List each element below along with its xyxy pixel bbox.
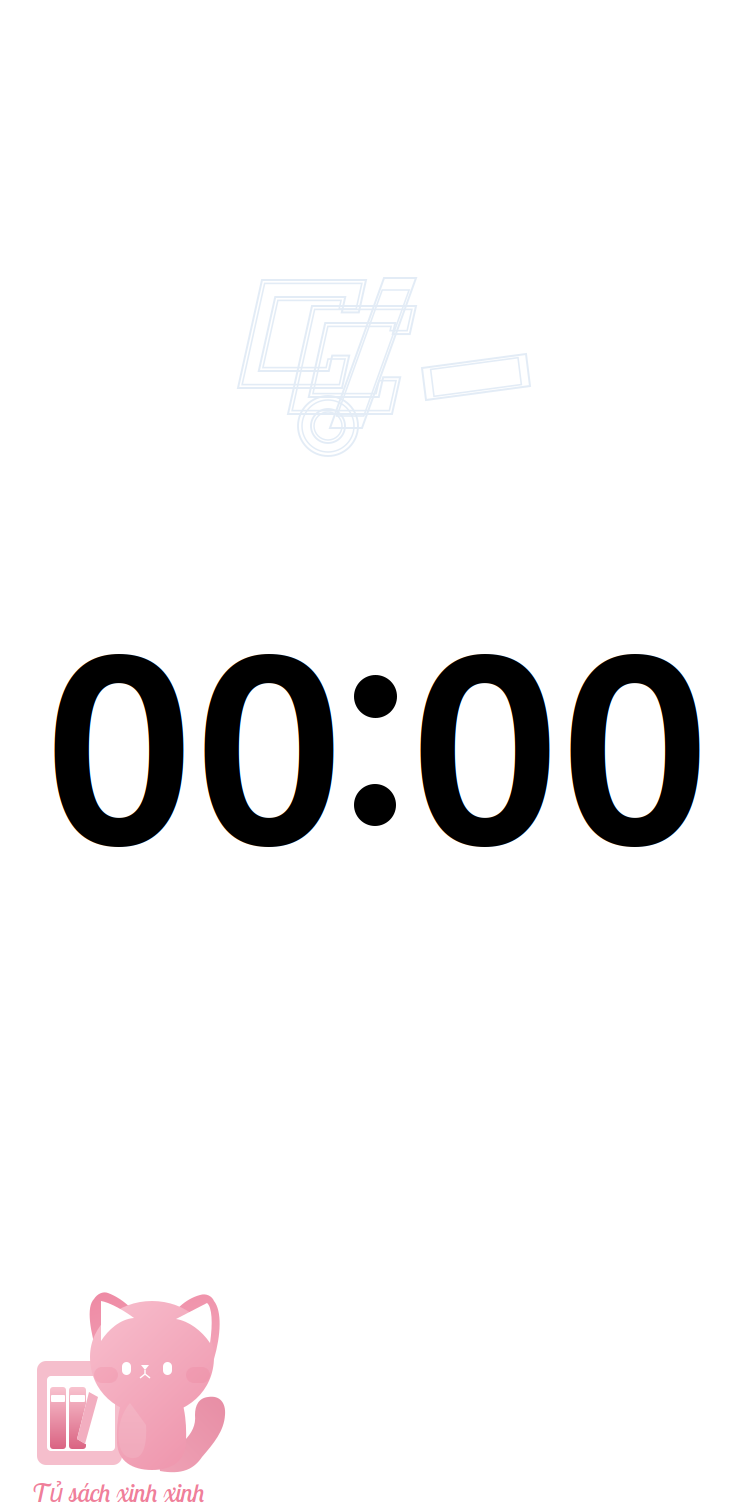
staticText: Tủ sách xinh xinh (32, 1475, 205, 1509)
button[interactable]: 00:00 (0, 615, 750, 875)
staticText: 00 (410, 574, 710, 916)
staticText: 00 (44, 574, 344, 916)
staticText: 00:00 (39, 574, 710, 916)
